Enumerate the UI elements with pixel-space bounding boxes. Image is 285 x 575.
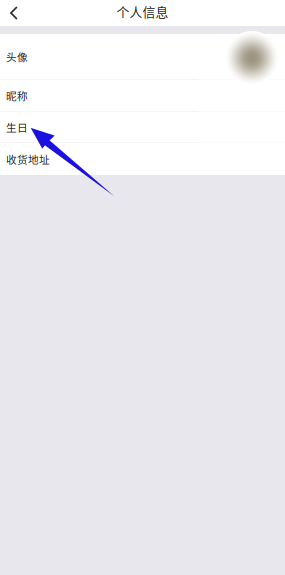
staticText: 头像 xyxy=(6,49,28,64)
staticText: 昵称 xyxy=(6,88,28,103)
staticText: 收货地址 xyxy=(6,151,50,167)
staticText: 生日 xyxy=(6,119,28,135)
staticText: 个人信息 xyxy=(116,2,168,21)
button[interactable]: 昵称 xyxy=(0,80,285,112)
button[interactable]: 生日 xyxy=(0,112,285,143)
button[interactable]: 头像 xyxy=(0,34,285,80)
button[interactable]: 收货地址 xyxy=(0,143,285,175)
button[interactable]: Back xyxy=(2,1,26,25)
